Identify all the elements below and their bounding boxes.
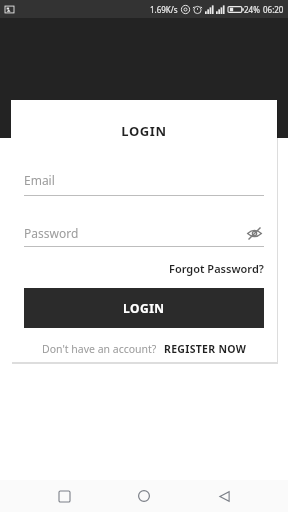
staticText: LOGIN	[11, 122, 277, 140]
button[interactable]: Back	[212, 484, 236, 508]
staticText: 24%	[244, 4, 260, 15]
button[interactable]: REGISTER NOW	[164, 342, 247, 356]
staticText: 06:20	[263, 4, 284, 15]
staticText: Password	[24, 225, 79, 241]
button[interactable]: Password	[24, 223, 264, 247]
button[interactable]: Recent apps	[52, 484, 76, 508]
staticText: Email	[24, 172, 55, 188]
staticText: REGISTER NOW	[164, 342, 247, 356]
button[interactable]: LOGIN	[24, 288, 264, 328]
staticText: 1.69K/s	[150, 4, 178, 15]
staticText: Don't have an account?	[42, 342, 157, 356]
button[interactable]: Show password	[244, 223, 264, 243]
button[interactable]: Home	[132, 484, 156, 508]
button[interactable]: Email	[24, 172, 264, 196]
staticText: Forgot Password?	[169, 261, 264, 276]
button[interactable]: Forgot Password?	[169, 261, 264, 276]
staticText: LOGIN	[123, 300, 165, 316]
